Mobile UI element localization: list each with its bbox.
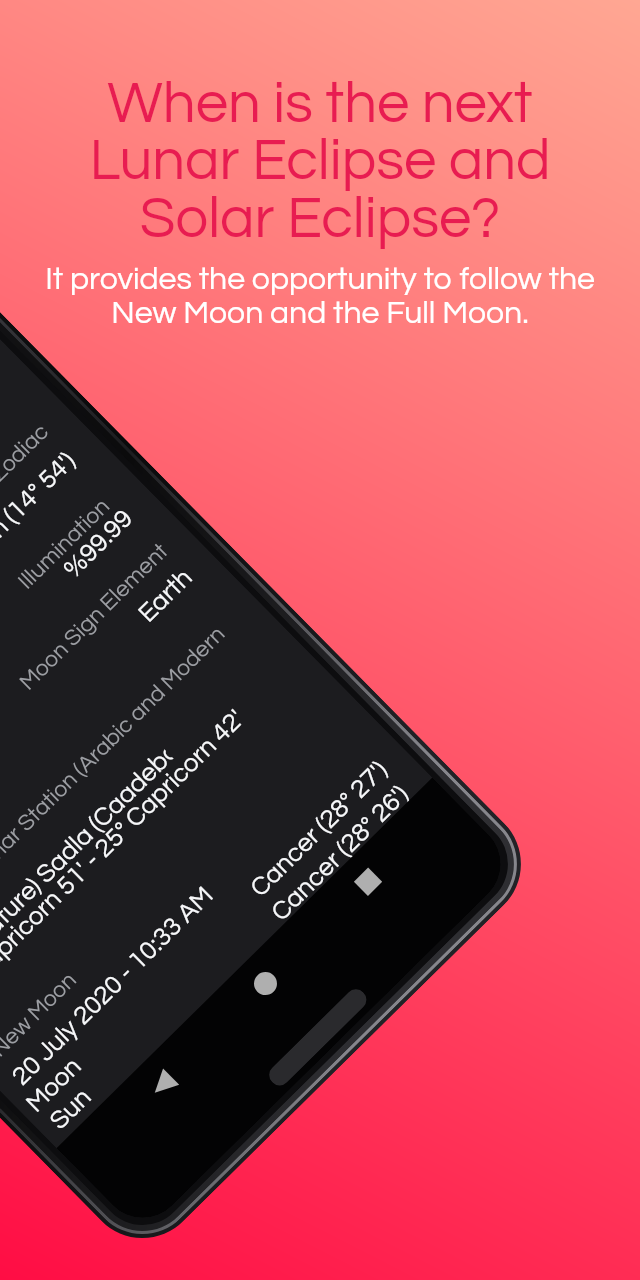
staticText: Nomenclature) Sadla (Caadebolach) (0, 744, 178, 1014)
staticText: Moon Sign Element (15, 539, 173, 695)
staticText: Illumination (14, 494, 115, 594)
staticText: Cancer (28° 27') (246, 756, 393, 902)
staticText: Moon (21, 1052, 87, 1118)
button[interactable] (127, 1049, 198, 1120)
staticText: Cancer (28° 26') (267, 780, 414, 926)
staticText: Sun (45, 1083, 97, 1135)
button[interactable] (333, 846, 403, 917)
staticText: Lunar Station (Arabic and Modern (0, 622, 230, 881)
staticText: %99.99 (59, 504, 139, 583)
staticText: When is the next Lunar Eclipse and Solar… (89, 74, 551, 249)
staticText: Moon Sign Zodiac (0, 419, 54, 565)
staticText: Capricorn (14° 54') (0, 447, 82, 614)
staticText: 20 July 2020 - 10:33 AM (7, 882, 219, 1091)
staticText: It provides the opportunity to follow th… (45, 263, 595, 330)
staticText: Earth (134, 564, 198, 628)
staticText: 24° Capricorn 51' - 25° Capricorn 42' (0, 705, 250, 1016)
staticText: New Moon (0, 967, 82, 1062)
button[interactable] (229, 948, 300, 1019)
